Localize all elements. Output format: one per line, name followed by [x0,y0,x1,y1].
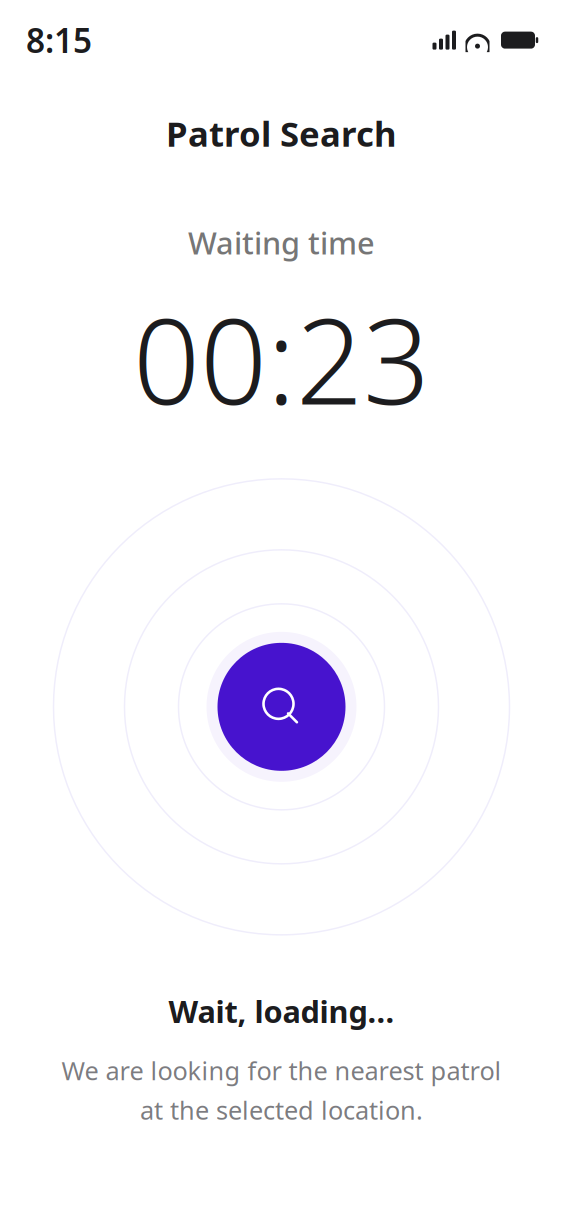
staticText: Waiting time [188,222,375,263]
staticText: Wait, loading... [168,991,394,1031]
staticText: We are looking for the nearest patrol [61,1054,501,1087]
button[interactable]: Searching for patrol [217,643,345,771]
staticText: at the selected location. [140,1093,423,1127]
staticText: Patrol Search [166,110,397,156]
staticText: 00:23 [133,281,430,437]
staticText: 8:15 [26,18,92,62]
